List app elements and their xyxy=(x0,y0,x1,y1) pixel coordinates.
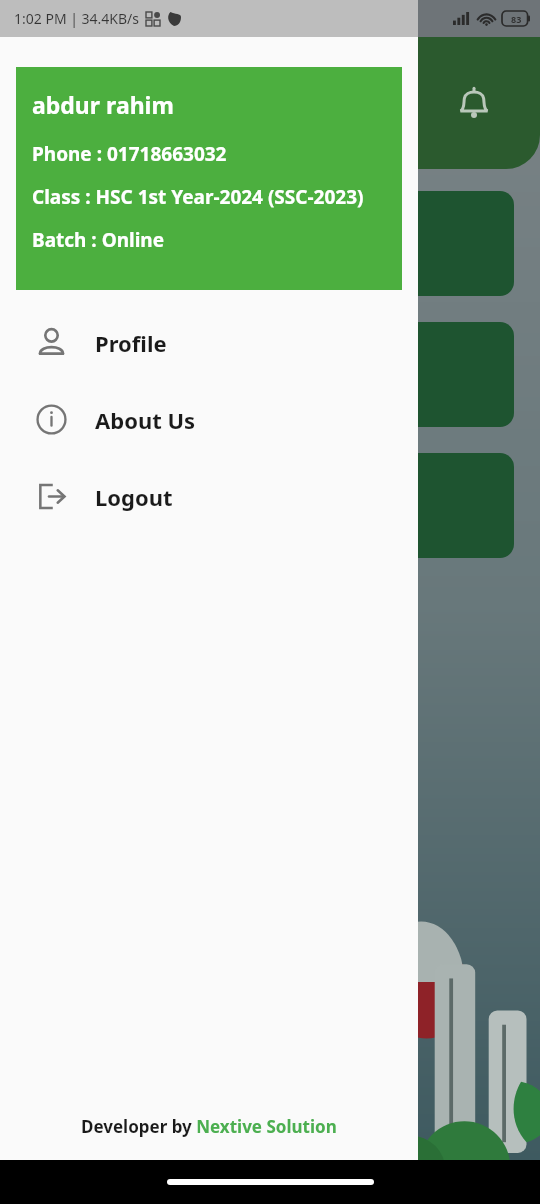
staticText: Logout xyxy=(95,482,173,512)
button[interactable]: মডেল টেস্ট xyxy=(26,322,514,427)
other: Logout xyxy=(36,481,67,512)
staticText: Developer by Nextive Solution xyxy=(81,1115,337,1138)
other: About Us xyxy=(36,404,67,435)
staticText: About Us xyxy=(95,405,196,435)
staticText: Batch : Online xyxy=(32,227,165,253)
button[interactable]: abdur rahim xyxy=(16,67,402,290)
staticText: 83 xyxy=(511,13,522,25)
button[interactable]: যোগাযোগ xyxy=(26,453,514,558)
staticText: Phone : 01718663032 xyxy=(32,141,227,167)
button[interactable]: Logout xyxy=(0,458,418,535)
staticText: Profile xyxy=(95,328,167,358)
other: Notifications xyxy=(454,83,494,123)
staticText: Class : HSC 1st Year-2024 (SSC-2023) xyxy=(32,184,364,210)
staticText: abdur rahim xyxy=(32,89,174,120)
button[interactable]: Profile xyxy=(0,304,418,381)
other: Profile xyxy=(36,327,67,358)
button[interactable]: About Us xyxy=(0,381,418,458)
staticText: 1:02 PM | 34.4KB/s xyxy=(14,9,140,28)
button[interactable]: লাইভ ক্লাস xyxy=(26,191,514,296)
